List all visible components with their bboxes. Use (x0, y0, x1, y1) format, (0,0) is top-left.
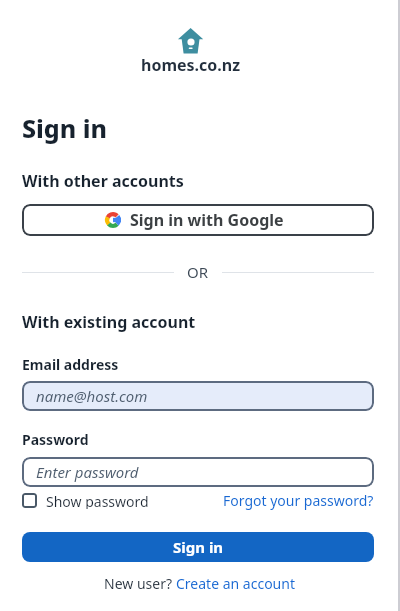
button[interactable]: Sign in with Google (22, 204, 374, 236)
button[interactable]: Sign in (22, 532, 374, 562)
button[interactable]: Create an account (176, 574, 295, 593)
button[interactable]: Show password (22, 492, 149, 509)
staticText: With other accounts (22, 170, 184, 192)
button[interactable]: name@host.com (22, 381, 374, 411)
staticText: Sign in (173, 537, 224, 557)
staticText: Show password (46, 492, 149, 509)
staticText: Sign in (22, 111, 108, 145)
button[interactable]: Enter password (22, 457, 374, 487)
button[interactable]: Forgot your password? (223, 491, 374, 510)
staticText: Email address (22, 355, 119, 374)
staticText: New user? (104, 574, 176, 593)
staticText: name@host.com (36, 386, 148, 406)
staticText: homes.co.nz (141, 54, 241, 76)
staticText: OR (187, 262, 209, 282)
staticText: Sign in with Google (130, 209, 284, 231)
staticText: Password (22, 430, 89, 449)
staticText: Enter password (36, 462, 139, 482)
staticText: With existing account (22, 311, 196, 333)
